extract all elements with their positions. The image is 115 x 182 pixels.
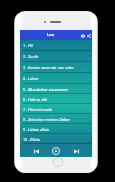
button[interactable]: 8 - Zwischen meinen Zeilen (20, 114, 92, 124)
button[interactable]: Next (71, 146, 81, 156)
staticText: Lea (47, 32, 55, 38)
button[interactable]: Play (52, 147, 60, 155)
staticText: 2 - Zu dir (23, 54, 39, 59)
staticText: 9 - Lieber allein (23, 127, 50, 132)
staticText: 1 - Fill (23, 43, 33, 48)
button[interactable]: 10 - Blicks (20, 134, 92, 144)
staticText: 4 - Leiser (23, 76, 39, 81)
button[interactable]: 2 - Zu dir (20, 51, 92, 62)
button[interactable]: 4 - Leiser (20, 73, 92, 84)
staticText: 6 - Halt so still (23, 97, 48, 102)
staticText: 7 - Hiermit mach (23, 107, 52, 112)
button[interactable]: 6 - Halt so still (20, 94, 92, 104)
staticText: 3 - Immer wenn wir uns sehn (23, 65, 74, 70)
button[interactable]: 7 - Hiermit mach (20, 104, 92, 114)
button[interactable]: Share (85, 32, 92, 39)
button[interactable]: Photo (79, 32, 86, 39)
button[interactable]: Previous (31, 146, 41, 156)
staticText: 10 - Blicks (23, 137, 41, 142)
button[interactable]: 3 - Immer wenn wir uns sehn (20, 62, 92, 73)
button[interactable]: 1 - Fill (20, 40, 92, 51)
staticText: 8 - Zwischen meinen Zeilen (23, 117, 70, 122)
staticText: 5 - Wunderbar zusammen (23, 87, 68, 92)
button[interactable]: 9 - Lieber allein (20, 124, 92, 134)
button[interactable]: 5 - Wunderbar zusammen (20, 84, 92, 94)
